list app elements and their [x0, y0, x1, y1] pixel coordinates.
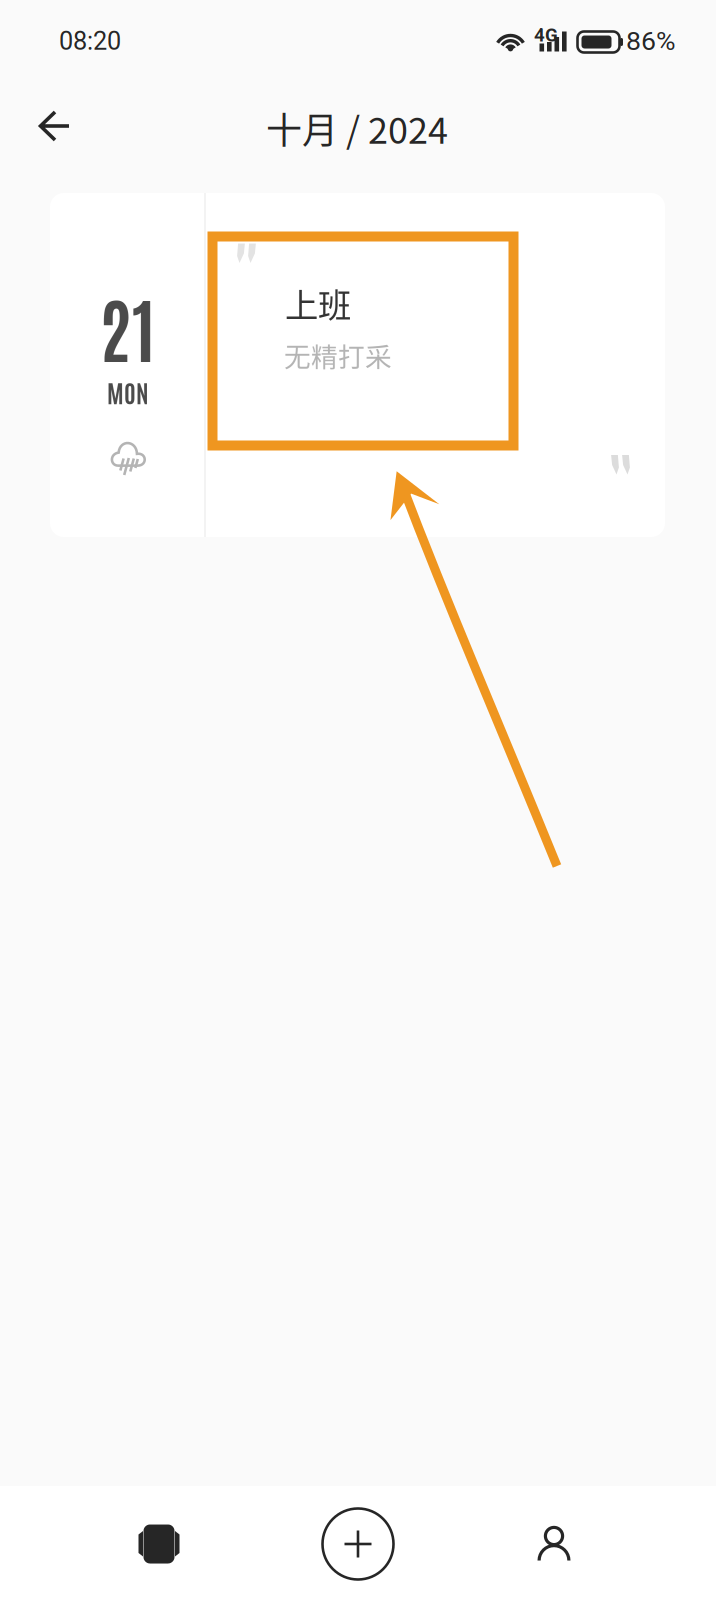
button[interactable]: Profile	[494, 1489, 614, 1599]
button[interactable]: Back	[6, 83, 102, 169]
button[interactable]: 21	[50, 193, 665, 537]
staticText: 十月 / 2024	[266, 102, 448, 154]
staticText: 86%	[626, 25, 676, 57]
button[interactable]: Add	[298, 1489, 418, 1599]
staticText: 08:20	[59, 26, 121, 56]
staticText: 4G	[534, 24, 558, 46]
staticText: 21	[99, 280, 155, 372]
button[interactable]: Cards	[99, 1489, 219, 1599]
staticText: 上班	[285, 279, 351, 327]
staticText: MON	[107, 376, 149, 408]
staticText: 无精打采	[284, 336, 392, 374]
